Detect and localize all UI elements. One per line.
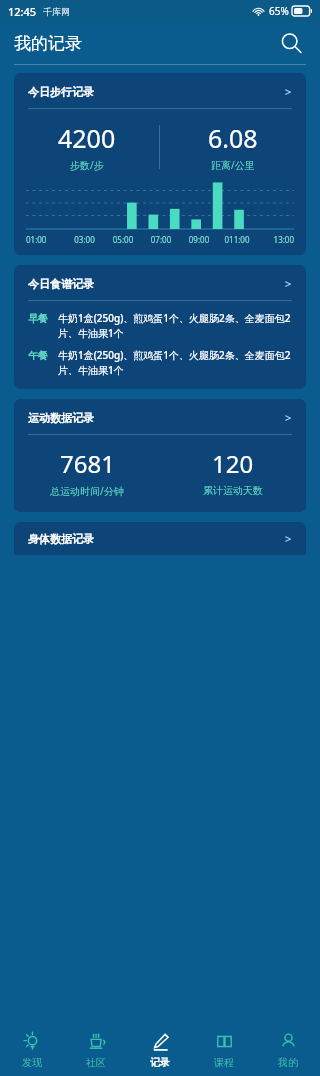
button[interactable]: 今日食谱记录 — [14, 265, 306, 300]
staticText: 6.08 — [208, 121, 258, 155]
button[interactable]: 今日步行记录 — [14, 73, 306, 108]
staticText: 午餐 — [28, 349, 48, 362]
button[interactable]: 记录 — [128, 1024, 192, 1076]
staticText: 12:45 — [8, 4, 37, 19]
button[interactable]: 我的 — [256, 1024, 320, 1076]
staticText: 千库网 — [43, 6, 70, 17]
staticText: 01:00 — [26, 234, 65, 245]
staticText: > — [285, 276, 292, 291]
staticText: 运动数据记录 — [28, 411, 94, 425]
staticText: 课程 — [214, 1056, 234, 1069]
button[interactable]: Search — [276, 28, 306, 58]
staticText: 总运动时间/分钟 — [50, 484, 124, 498]
staticText: 记录 — [150, 1056, 170, 1069]
button[interactable]: 课程 — [192, 1024, 256, 1076]
staticText: 4200 — [58, 121, 116, 155]
staticText: 步数/步 — [70, 158, 104, 172]
staticText: 65% — [269, 4, 289, 18]
staticText: 今日食谱记录 — [28, 277, 94, 291]
staticText: 09:00 — [180, 234, 218, 245]
button[interactable]: 身体数据记录 — [14, 522, 306, 555]
button[interactable]: 早餐 — [14, 311, 306, 340]
button[interactable]: 社区 — [64, 1024, 128, 1076]
staticText: 身体数据记录 — [28, 532, 94, 546]
staticText: 发现 — [22, 1056, 42, 1069]
staticText: 03:00 — [65, 234, 104, 245]
staticText: 累计运动天数 — [203, 484, 263, 497]
button[interactable]: 发现 — [0, 1024, 64, 1076]
staticText: > — [285, 84, 292, 99]
button[interactable]: 运动数据记录 — [14, 399, 306, 434]
staticText: 距离/公里 — [211, 158, 255, 172]
button[interactable]: 午餐 — [14, 348, 306, 377]
staticText: 牛奶1盒(250g)、煎鸡蛋1个、火腿肠2条、全麦面包2片、牛油果1个 — [58, 348, 294, 377]
staticText: 05:00 — [104, 234, 142, 245]
staticText: > — [285, 410, 292, 425]
staticText: 我的记录 — [14, 33, 82, 54]
staticText: 社区 — [86, 1056, 106, 1069]
staticText: 07:00 — [142, 234, 180, 245]
staticText: 牛奶1盒(250g)、煎鸡蛋1个、火腿肠2条、全麦面包2片、牛油果1个 — [58, 311, 294, 340]
staticText: 7681 — [60, 447, 115, 480]
staticText: 120 — [212, 447, 254, 480]
staticText: 我的 — [278, 1056, 298, 1069]
staticText: > — [285, 531, 292, 546]
staticText: 13:00 — [256, 234, 294, 245]
staticText: 011:00 — [218, 234, 256, 245]
staticText: 早餐 — [28, 312, 48, 325]
staticText: 今日步行记录 — [28, 85, 94, 99]
